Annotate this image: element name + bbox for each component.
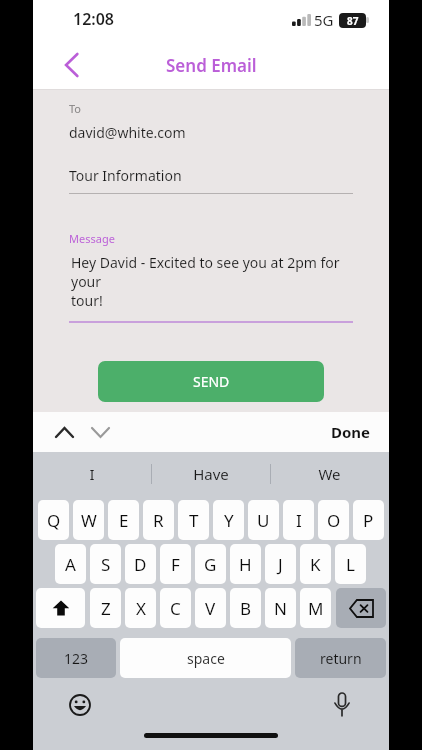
staticText: Done — [331, 422, 371, 442]
staticText: Hey David - Excited to see you at 2pm fo… — [71, 253, 353, 310]
staticText: E — [119, 509, 129, 532]
staticText: 123 — [64, 649, 89, 668]
staticText: Q — [47, 509, 61, 532]
button[interactable]: D — [125, 544, 156, 584]
staticText: space — [187, 649, 225, 668]
staticText: G — [204, 553, 217, 576]
staticText: 87 — [347, 14, 359, 28]
staticText: J — [278, 553, 283, 576]
button[interactable]: I — [283, 500, 314, 540]
staticText: I — [296, 509, 302, 532]
staticText: L — [346, 553, 355, 576]
staticText: Y — [224, 509, 234, 532]
staticText: O — [327, 509, 341, 532]
button[interactable]: N — [265, 588, 296, 628]
button[interactable]: david@white.com — [69, 123, 353, 142]
staticText: We — [318, 464, 341, 484]
staticText: 5G — [314, 10, 334, 30]
button[interactable]: S — [90, 544, 121, 584]
staticText: H — [239, 553, 252, 576]
button[interactable]: A — [55, 544, 86, 584]
button[interactable]: K — [300, 544, 331, 584]
staticText: X — [136, 597, 146, 620]
button[interactable]: Tour Information — [69, 166, 353, 194]
button[interactable]: Have — [151, 452, 270, 496]
staticText: A — [65, 553, 76, 576]
button[interactable]: Y — [213, 500, 244, 540]
staticText: SEND — [193, 372, 230, 391]
staticText: N — [274, 597, 287, 620]
staticText: V — [205, 597, 216, 620]
button[interactable]: F — [160, 544, 191, 584]
button[interactable]: T — [178, 500, 209, 540]
button[interactable]: U — [248, 500, 279, 540]
staticText: T — [189, 509, 199, 532]
staticText: P — [363, 509, 374, 532]
button[interactable]: Emoji — [63, 688, 97, 722]
button[interactable]: H — [230, 544, 261, 584]
button[interactable]: P — [353, 500, 384, 540]
button[interactable]: SEND — [98, 361, 324, 402]
button[interactable]: C — [160, 588, 191, 628]
button[interactable]: space — [120, 638, 291, 678]
button[interactable]: Shift — [36, 588, 85, 628]
button[interactable]: return — [295, 638, 386, 678]
staticText: R — [153, 509, 164, 532]
button[interactable]: V — [195, 588, 226, 628]
staticText: Z — [101, 597, 111, 620]
staticText: B — [240, 597, 252, 620]
staticText: Tour Information — [69, 166, 182, 185]
staticText: S — [101, 553, 111, 576]
button[interactable]: G — [195, 544, 226, 584]
button[interactable]: I — [33, 452, 151, 496]
staticText: C — [170, 597, 181, 620]
staticText: U — [257, 509, 270, 532]
button[interactable]: W — [73, 500, 104, 540]
staticText: To — [69, 101, 82, 116]
button[interactable]: Done — [331, 422, 371, 442]
button[interactable]: Q — [38, 500, 69, 540]
staticText: Message — [69, 231, 115, 246]
button[interactable]: Backspace — [336, 588, 386, 628]
button[interactable]: Previous field — [47, 415, 81, 449]
button[interactable]: O — [318, 500, 349, 540]
button[interactable]: R — [143, 500, 174, 540]
staticText: K — [310, 553, 321, 576]
staticText: I — [89, 464, 95, 484]
button[interactable]: J — [265, 544, 296, 584]
staticText: Send Email — [166, 54, 257, 77]
button[interactable]: Hey David - Excited to see you at 2pm fo… — [69, 253, 353, 323]
staticText: Have — [193, 464, 229, 484]
button[interactable]: Back — [51, 45, 91, 85]
button[interactable]: M — [300, 588, 331, 628]
staticText: M — [308, 597, 324, 620]
staticText: 12:08 — [73, 8, 115, 30]
staticText: return — [320, 649, 362, 668]
button[interactable]: Z — [90, 588, 121, 628]
button[interactable]: E — [108, 500, 139, 540]
button[interactable]: L — [335, 544, 366, 584]
button[interactable]: Voice input — [325, 688, 359, 722]
button[interactable]: X — [125, 588, 156, 628]
staticText: david@white.com — [69, 123, 186, 142]
staticText: W — [81, 509, 97, 532]
staticText: D — [134, 553, 147, 576]
staticText: F — [171, 553, 180, 576]
button[interactable]: We — [270, 452, 389, 496]
button[interactable]: Next field — [83, 415, 117, 449]
button[interactable]: B — [230, 588, 261, 628]
button[interactable]: 123 — [36, 638, 116, 678]
